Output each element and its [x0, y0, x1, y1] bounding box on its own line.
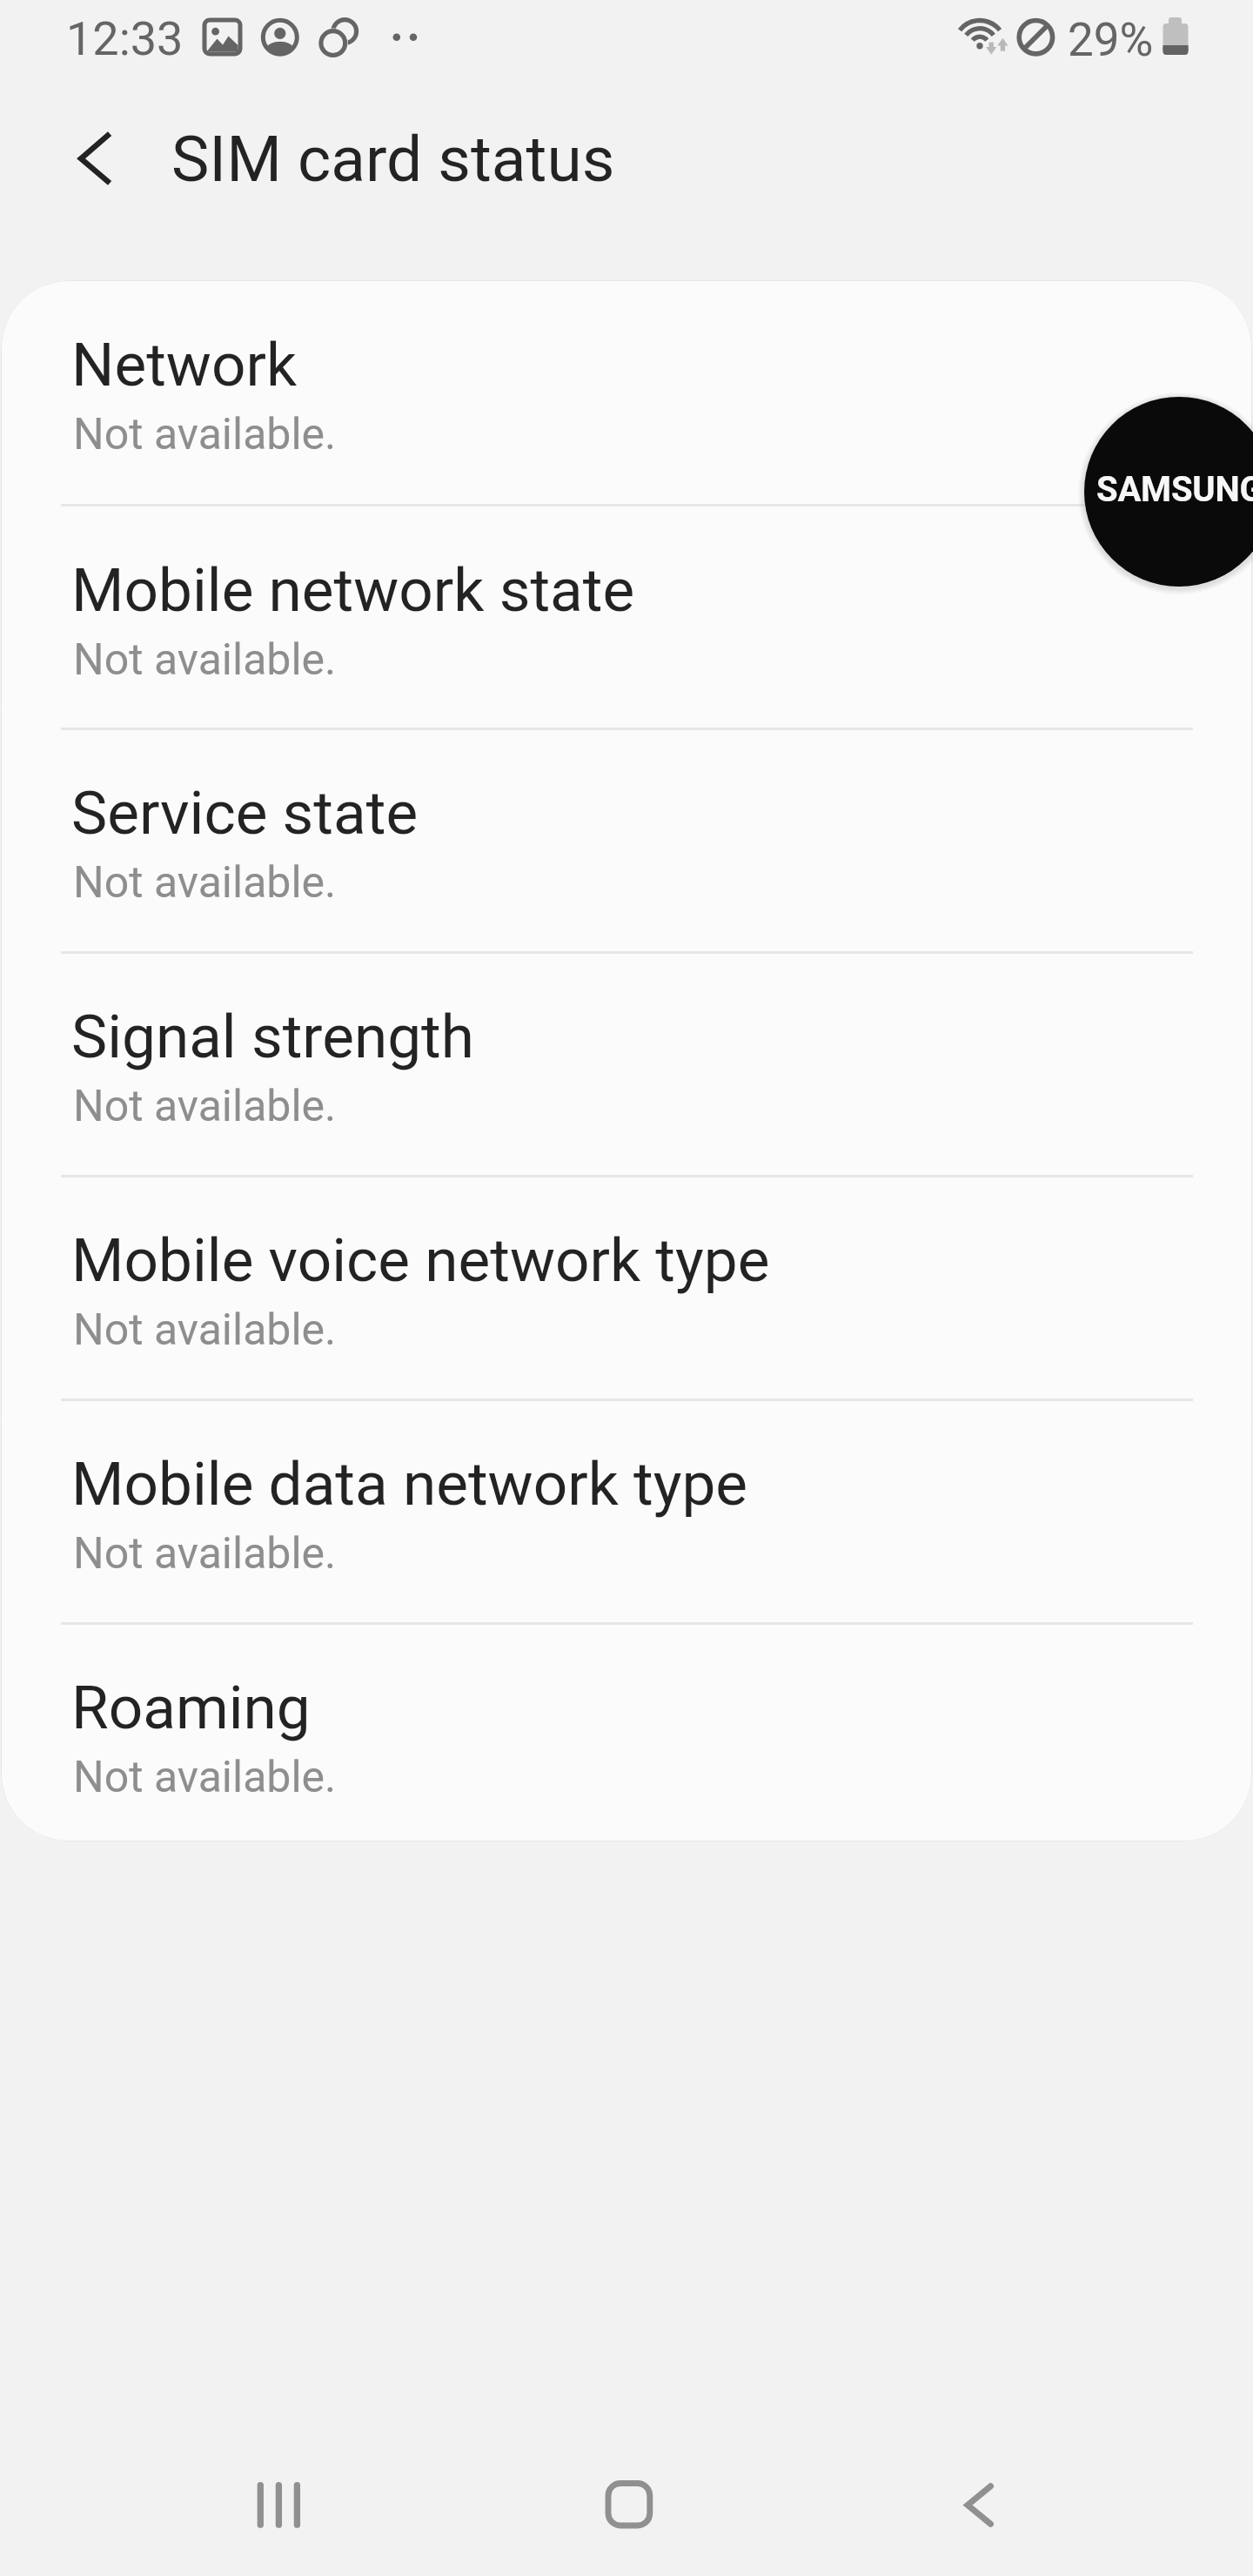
staticText: Mobile network state	[71, 555, 635, 626]
button[interactable]: Mobile voice network type	[1, 1176, 1252, 1399]
staticText: SIM card status	[171, 122, 615, 197]
button[interactable]: Home	[574, 2452, 679, 2557]
staticText: Mobile data network type	[71, 1449, 748, 1519]
button[interactable]: Recent apps	[218, 2452, 322, 2557]
button[interactable]: Mobile data network type	[1, 1399, 1252, 1623]
staticText: Not available.	[73, 634, 337, 686]
staticText: Not available.	[73, 1305, 337, 1356]
button[interactable]: Mobile network state	[1, 506, 1252, 729]
staticText: Network	[71, 330, 298, 400]
button[interactable]: Back	[922, 2452, 1027, 2557]
staticText: 29%	[1068, 13, 1154, 67]
staticText: Mobile voice network type	[71, 1225, 770, 1296]
staticText: Signal strength	[71, 1002, 474, 1072]
staticText: 12:33	[66, 11, 184, 66]
staticText: SAMSUNG	[1096, 469, 1253, 510]
staticText: Roaming	[71, 1673, 311, 1743]
staticText: Not available.	[73, 409, 337, 460]
button[interactable]: Signal strength	[1, 952, 1252, 1176]
staticText: Service state	[71, 778, 419, 849]
staticText: Not available.	[73, 857, 337, 909]
button[interactable]: Navigate up	[33, 111, 129, 206]
button[interactable]: Roaming	[1, 1623, 1252, 1841]
staticText: Not available.	[73, 1081, 337, 1132]
staticText: Not available.	[73, 1528, 337, 1580]
button[interactable]: Service state	[1, 728, 1252, 952]
button[interactable]: Network	[1, 280, 1252, 506]
staticText: Not available.	[73, 1752, 337, 1803]
